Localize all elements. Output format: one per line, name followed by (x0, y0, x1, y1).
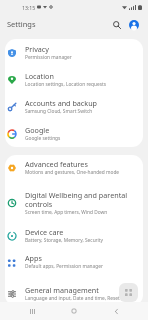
button[interactable]: Device care (5, 221, 143, 250)
staticText: Device care (25, 227, 64, 237)
staticText: Language and input, Date and time, Reset (25, 295, 120, 302)
button[interactable]: Digital Wellbeing and parental controls (5, 185, 143, 221)
button[interactable]: Location (5, 66, 143, 93)
staticText: Settings (7, 19, 36, 29)
staticText: Permission manager (25, 54, 72, 61)
staticText: Google (25, 125, 50, 135)
staticText: Google settings (25, 135, 61, 142)
staticText: Accounts and backup (25, 98, 97, 108)
button[interactable]: Recents (22, 302, 42, 320)
button[interactable]: Privacy (5, 39, 143, 66)
staticText: Battery, Storage, Memory, Security (25, 237, 103, 244)
button[interactable]: Back (106, 302, 126, 320)
staticText: 13:15 (22, 4, 36, 11)
staticText: Motions and gestures, One-handed mode (25, 169, 120, 176)
staticText: Samsung Cloud, Smart Switch (25, 108, 93, 115)
button[interactable]: App pairs (119, 283, 138, 302)
button[interactable]: Home (64, 302, 84, 320)
button[interactable]: Google (5, 120, 143, 147)
staticText: Digital Wellbeing and parental controls (25, 190, 136, 209)
button[interactable]: Account (125, 16, 142, 33)
button[interactable]: General management (5, 280, 143, 306)
staticText: Screen time, App timers, Wind Down (25, 209, 108, 216)
button[interactable]: Accounts and backup (5, 93, 143, 120)
button[interactable]: Apps (5, 250, 143, 280)
button[interactable]: Advanced features (5, 155, 143, 185)
staticText: Default apps, Permission manager (25, 263, 103, 270)
staticText: General management (25, 285, 99, 295)
staticText: Location (25, 71, 54, 81)
staticText: Advanced features (25, 159, 88, 169)
staticText: Apps (25, 253, 42, 263)
staticText: Location settings, Location requests (25, 81, 106, 88)
button[interactable]: Search (108, 16, 125, 33)
staticText: Privacy (25, 44, 49, 54)
